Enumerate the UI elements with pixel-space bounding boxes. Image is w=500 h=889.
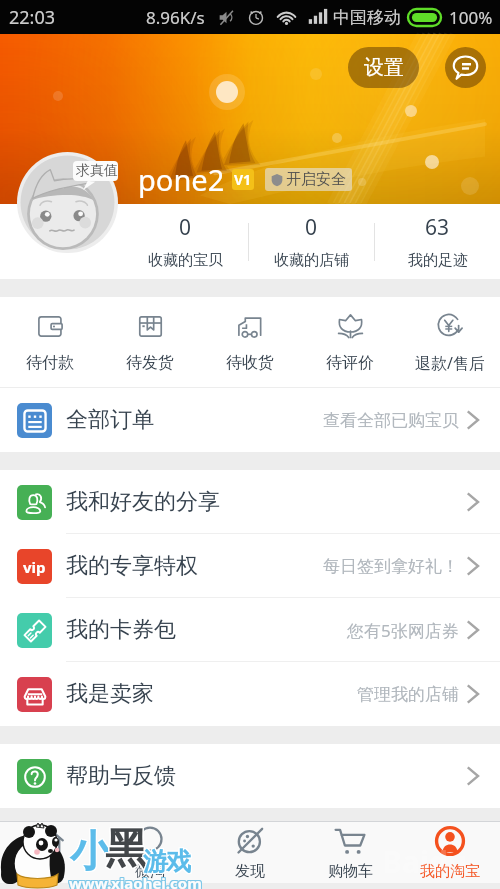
- staticText: 小: [69, 825, 111, 878]
- staticText: 游: [144, 845, 169, 876]
- button[interactable]: vip: [0, 534, 500, 598]
- staticText: 戏: [166, 845, 191, 876]
- staticText: 微淘: [135, 862, 165, 881]
- staticText: 戏: [167, 845, 192, 876]
- staticText: 黑: [104, 823, 146, 876]
- staticText: 我的专享特权: [66, 552, 198, 580]
- staticText: www.xiaohei.com: [68, 874, 201, 889]
- staticText: 管理我的店铺: [357, 684, 459, 705]
- staticText: 戏: [167, 846, 192, 877]
- button[interactable]: 购物车: [300, 822, 400, 883]
- staticText: 戏: [165, 847, 190, 878]
- staticText: vip: [23, 557, 46, 577]
- staticText: 我是卖家: [66, 680, 154, 708]
- staticText: V1: [234, 170, 252, 189]
- staticText: www.xiaohei.com: [70, 874, 203, 889]
- staticText: 开启安全: [286, 170, 346, 189]
- staticText: 我的淘宝: [420, 862, 480, 881]
- button[interactable]: 63: [375, 204, 500, 279]
- staticText: www.xiaohei.com: [69, 874, 202, 889]
- staticText: 我的足迹: [408, 251, 468, 270]
- staticText: 0: [305, 213, 318, 242]
- staticText: 购物车: [328, 862, 373, 881]
- button[interactable]: 开启安全: [265, 168, 352, 191]
- staticText: www.xiaohei.com: [70, 872, 203, 889]
- staticText: 小: [71, 826, 113, 879]
- staticText: 黑: [104, 824, 146, 877]
- staticText: 戏: [165, 846, 190, 877]
- staticText: 设置: [364, 55, 404, 80]
- staticText: 游: [142, 846, 167, 877]
- staticText: 黑: [106, 824, 148, 877]
- staticText: 22:03: [9, 5, 56, 30]
- staticText: 待评价: [326, 353, 374, 373]
- staticText: 0: [179, 213, 192, 242]
- staticText: 待发货: [126, 353, 174, 373]
- staticText: 8.96K/s: [146, 6, 205, 29]
- staticText: 收藏的宝贝: [148, 251, 223, 270]
- staticText: 您有5张网店券: [347, 619, 459, 642]
- button[interactable]: 我的淘宝: [400, 822, 500, 883]
- staticText: 每日签到拿好礼！: [323, 556, 459, 577]
- staticText: 戏: [167, 847, 192, 878]
- button[interactable]: 待评价: [300, 297, 400, 387]
- button[interactable]: 首页: [0, 822, 100, 883]
- staticText: 黑: [105, 824, 147, 877]
- staticText: 首页: [35, 862, 65, 881]
- staticText: 退款/售后: [415, 352, 485, 374]
- button[interactable]: 待付款: [0, 297, 100, 387]
- staticText: 游: [144, 847, 169, 878]
- staticText: 待收货: [226, 353, 274, 373]
- staticText: 戏: [166, 846, 191, 877]
- button[interactable]: 我的卡券包: [0, 598, 500, 662]
- staticText: 小: [71, 825, 113, 878]
- staticText: 黑: [105, 822, 147, 875]
- staticText: www.xiaohei.com: [69, 873, 202, 889]
- staticText: 戏: [166, 847, 191, 878]
- button[interactable]: 全部订单: [0, 388, 500, 452]
- staticText: www.xiaohei.com: [68, 873, 201, 889]
- staticText: 小: [70, 827, 112, 880]
- button[interactable]: Messages: [445, 47, 486, 88]
- staticText: 黑: [106, 822, 148, 875]
- staticText: 戏: [165, 845, 190, 876]
- button[interactable]: 退款/售后: [400, 297, 500, 387]
- staticText: 小: [70, 825, 112, 878]
- staticText: 发现: [235, 862, 265, 881]
- staticText: 查看全部已购宝贝: [323, 410, 459, 431]
- staticText: 中国移动: [333, 7, 401, 28]
- staticText: 我和好友的分享: [66, 488, 220, 516]
- staticText: 游: [142, 847, 167, 878]
- staticText: 黑: [106, 823, 148, 876]
- staticText: Baidu: [382, 841, 468, 882]
- staticText: 求真值: [76, 162, 118, 180]
- staticText: pone2: [138, 160, 225, 199]
- staticText: www.xiaohei.com: [69, 872, 202, 889]
- button[interactable]: 待收货: [200, 297, 300, 387]
- staticText: www.xiaohei.com: [70, 873, 203, 889]
- staticText: 帮助与反馈: [66, 762, 176, 790]
- button[interactable]: 待发货: [100, 297, 200, 387]
- staticText: 黑: [104, 822, 146, 875]
- button[interactable]: 微淘: [100, 822, 200, 883]
- staticText: 黑: [105, 823, 147, 876]
- button[interactable]: 我和好友的分享: [0, 470, 500, 534]
- button[interactable]: 帮助与反馈: [0, 744, 500, 808]
- staticText: www.xiaohei.com: [68, 872, 201, 889]
- button[interactable]: Profile photo: [17, 152, 118, 253]
- staticText: 小: [69, 826, 111, 879]
- staticText: 我的卡券包: [66, 616, 176, 644]
- staticText: 100%: [449, 6, 493, 29]
- staticText: 收藏的店铺: [274, 251, 349, 270]
- button[interactable]: 发现: [200, 822, 300, 883]
- staticText: 全部订单: [66, 406, 154, 434]
- button[interactable]: 0: [249, 204, 374, 279]
- button[interactable]: 设置: [348, 47, 419, 88]
- button[interactable]: 我是卖家: [0, 662, 500, 726]
- staticText: 小: [69, 827, 111, 880]
- staticText: 待付款: [26, 353, 74, 373]
- staticText: 游: [142, 845, 167, 876]
- button[interactable]: 0: [122, 204, 248, 279]
- staticText: 游: [144, 846, 169, 877]
- staticText: 小: [71, 827, 113, 880]
